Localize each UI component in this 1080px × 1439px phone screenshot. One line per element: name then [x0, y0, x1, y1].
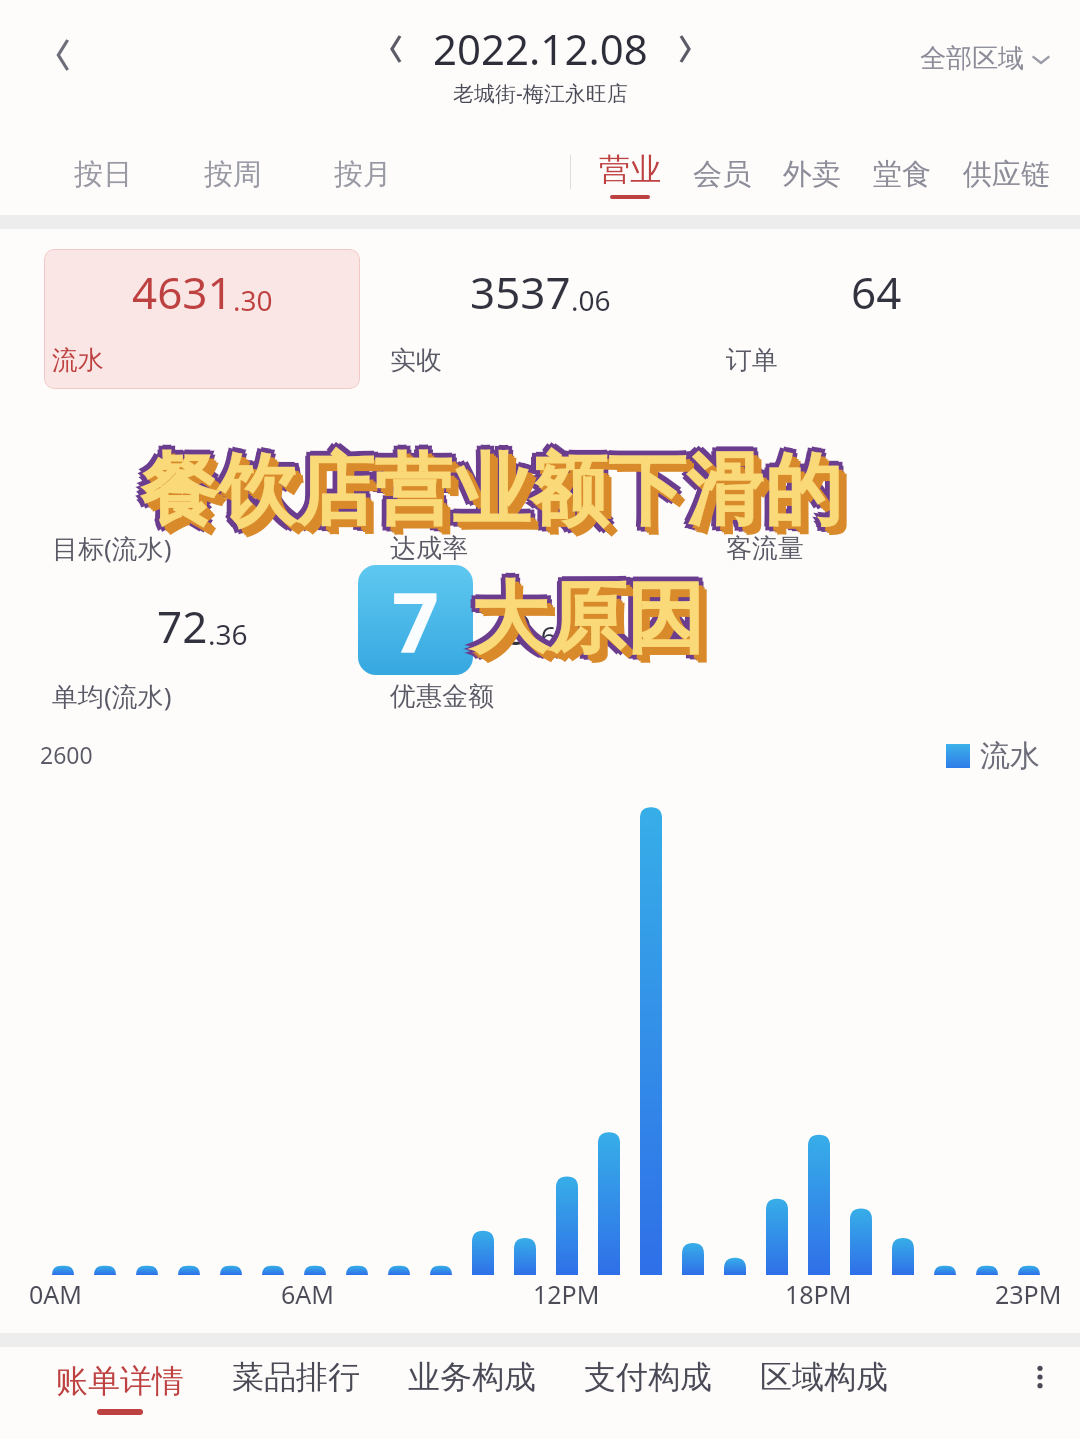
- staticText: 会员: [693, 156, 751, 193]
- button[interactable]: 9: [380, 585, 700, 725]
- staticText: 72: [157, 596, 208, 656]
- staticText: 3537: [470, 262, 571, 322]
- staticText: 餐饮店营业额下滑的: [140, 442, 842, 540]
- staticText: 业务构成: [408, 1358, 536, 1397]
- staticText: 单均(流水): [52, 678, 352, 714]
- staticText: 大原因: [478, 578, 712, 676]
- button[interactable]: 外卖: [775, 146, 849, 203]
- button[interactable]: 会员: [685, 146, 759, 203]
- staticText: 按日: [74, 156, 132, 193]
- button[interactable]: 4631: [44, 249, 360, 389]
- staticText: 流水: [980, 737, 1040, 775]
- staticText: 客流量: [726, 532, 1026, 565]
- staticText: 外卖: [783, 156, 841, 193]
- button[interactable]: Next day: [658, 22, 712, 76]
- staticText: 大原因: [474, 566, 708, 664]
- staticText: 订单: [726, 344, 1026, 377]
- staticText: 按月: [334, 156, 392, 193]
- staticText: 餐饮店营业额下滑的: [148, 450, 850, 548]
- staticText: 4631: [132, 262, 233, 322]
- staticText: 达成率: [390, 532, 690, 565]
- button[interactable]: More: [1014, 1351, 1066, 1403]
- button[interactable]: 按月: [318, 148, 408, 201]
- staticText: 大原因: [476, 576, 710, 674]
- staticText: 餐饮店营业额下滑的: [146, 448, 848, 546]
- staticText: 0AM: [29, 1277, 82, 1311]
- staticText: 9: [507, 598, 533, 658]
- staticText: 23PM: [995, 1277, 1062, 1311]
- button[interactable]: 客流量: [716, 449, 1036, 579]
- staticText: 餐饮店营业额下滑的: [145, 442, 847, 540]
- button[interactable]: 支付构成: [580, 1358, 716, 1418]
- button[interactable]: 目标(流水): [44, 449, 360, 579]
- staticText: .64: [533, 617, 573, 655]
- button[interactable]: 业务构成: [404, 1358, 540, 1418]
- staticText: 大原因: [474, 574, 708, 672]
- staticText: 餐饮店营业额下滑的: [135, 442, 837, 540]
- staticText: .06: [571, 281, 611, 319]
- staticText: 餐饮店营业额下滑的: [144, 446, 846, 544]
- staticText: 目标(流水): [52, 530, 352, 566]
- staticText: 餐饮店营业额下滑的: [140, 447, 842, 545]
- staticText: 6AM: [281, 1277, 334, 1311]
- button[interactable]: Back: [30, 22, 96, 88]
- button[interactable]: 菜品排行: [228, 1358, 364, 1418]
- staticText: 大原因: [465, 570, 699, 668]
- staticText: 大原因: [470, 575, 704, 673]
- button[interactable]: 区域构成: [756, 1358, 892, 1418]
- staticText: 实收: [390, 344, 690, 377]
- staticText: 区域构成: [760, 1358, 888, 1397]
- staticText: 按周: [204, 156, 262, 193]
- staticText: 供应链: [963, 156, 1050, 193]
- staticText: 7: [392, 565, 439, 675]
- staticText: 大原因: [466, 566, 700, 664]
- button[interactable]: 达成率: [380, 449, 700, 579]
- button[interactable]: 堂食: [865, 146, 939, 203]
- button[interactable]: 3537: [380, 249, 700, 389]
- button[interactable]: 供应链: [955, 146, 1058, 203]
- staticText: 支付构成: [584, 1358, 712, 1397]
- staticText: 老城街-梅江永旺店: [453, 79, 628, 108]
- staticText: 餐饮店营业额下滑的: [136, 438, 838, 536]
- button[interactable]: 营业: [591, 146, 669, 203]
- staticText: 全部区域: [920, 42, 1024, 75]
- button[interactable]: Previous day: [369, 22, 423, 76]
- button[interactable]: 按日: [58, 148, 148, 201]
- staticText: 营业: [599, 150, 661, 189]
- staticText: 64: [851, 262, 902, 322]
- staticText: 账单详情: [56, 1361, 184, 1401]
- staticText: 18PM: [785, 1277, 852, 1311]
- staticText: 餐饮店营业额下滑的: [144, 438, 846, 536]
- staticText: 优惠金额: [390, 680, 690, 713]
- staticText: 大原因: [470, 565, 704, 663]
- button[interactable]: 72: [44, 585, 360, 725]
- button[interactable]: 全部区域: [914, 36, 1058, 81]
- staticText: 餐饮店营业额下滑的: [136, 446, 838, 544]
- staticText: 流水: [52, 344, 352, 377]
- staticText: 12PM: [533, 1277, 600, 1311]
- staticText: .36: [208, 615, 248, 653]
- staticText: 餐饮店营业额下滑的: [140, 437, 842, 535]
- button[interactable]: 64: [716, 249, 1036, 389]
- button[interactable]: 账单详情: [52, 1361, 188, 1415]
- staticText: 菜品排行: [232, 1358, 360, 1397]
- staticText: 大原因: [466, 574, 700, 672]
- staticText: 大原因: [470, 570, 704, 668]
- button[interactable]: 按周: [188, 148, 278, 201]
- staticText: 堂食: [873, 156, 931, 193]
- staticText: 餐饮店营业额下滑的: [144, 446, 846, 544]
- staticText: .30: [233, 281, 273, 319]
- staticText: 2022.12.08: [433, 20, 648, 77]
- staticText: 2600: [40, 739, 93, 770]
- staticText: 大原因: [474, 574, 708, 672]
- staticText: 大原因: [475, 570, 709, 668]
